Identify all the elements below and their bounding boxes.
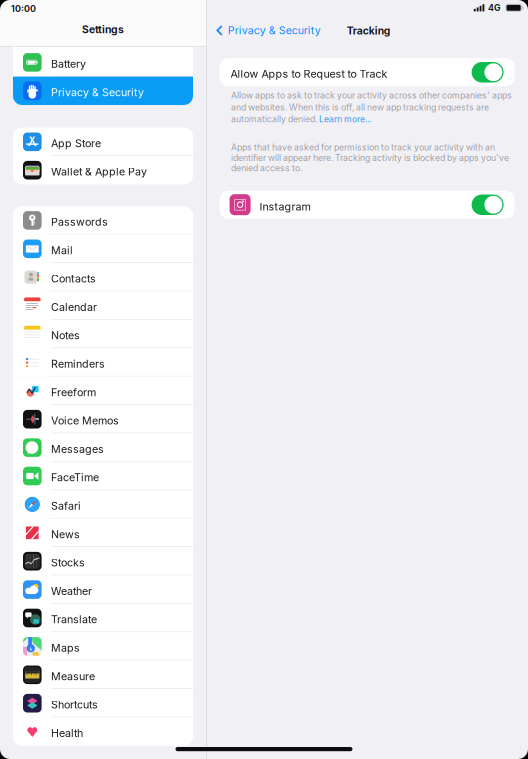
- staticText: Health: [51, 727, 83, 739]
- staticText: Passwords: [51, 215, 108, 228]
- button[interactable]: Notes: [13, 320, 193, 348]
- staticText: Weather: [51, 585, 92, 597]
- button[interactable]: Stocks: [13, 547, 193, 575]
- button[interactable]: Privacy & Security: [13, 77, 193, 105]
- staticText: Allow apps to ask to track your activity…: [231, 90, 512, 100]
- staticText: Notes: [51, 329, 80, 342]
- staticText: Allow Apps to Request to Track: [231, 67, 388, 80]
- button[interactable]: Safari: [13, 490, 193, 519]
- staticText: Battery: [51, 57, 86, 70]
- button[interactable]: Messages: [13, 433, 193, 462]
- staticText: Privacy & Security: [51, 86, 144, 99]
- staticText: Translate: [51, 613, 97, 626]
- button[interactable]: Learn more...: [319, 114, 371, 124]
- staticText: Voice Memos: [51, 414, 119, 427]
- staticText: Shortcuts: [51, 698, 98, 711]
- button[interactable]: App Store: [13, 128, 193, 156]
- button[interactable]: News: [13, 519, 193, 547]
- button[interactable]: Mail: [13, 235, 193, 263]
- button[interactable]: Instagram: [220, 191, 515, 219]
- staticText: Measure: [51, 670, 95, 683]
- staticText: Tracking: [347, 24, 391, 37]
- button[interactable]: Translate: [13, 604, 193, 632]
- staticText: Settings: [82, 23, 124, 36]
- staticText: Wallet & Apple Pay: [51, 165, 147, 178]
- button[interactable]: Maps: [13, 632, 193, 661]
- staticText: Apps that have asked for permission to t…: [231, 142, 509, 173]
- staticText: Reminders: [51, 357, 105, 370]
- button[interactable]: Privacy & Security: [216, 24, 321, 37]
- button[interactable]: Calendar: [13, 291, 193, 320]
- staticText: Learn more...: [319, 114, 371, 124]
- staticText: Calendar: [51, 301, 97, 313]
- staticText: Privacy & Security: [228, 24, 321, 37]
- staticText: FaceTime: [51, 471, 99, 484]
- staticText: 4G: [488, 2, 501, 13]
- staticText: App Store: [51, 137, 101, 150]
- button[interactable]: Freeform: [13, 377, 193, 405]
- button[interactable]: Weather: [13, 575, 193, 604]
- button[interactable]: Reminders: [13, 348, 193, 377]
- staticText: automatically denied.: [231, 114, 319, 124]
- staticText: News: [51, 528, 80, 541]
- staticText: Messages: [51, 443, 104, 455]
- button[interactable]: Health: [13, 717, 193, 746]
- button[interactable]: Passwords: [13, 206, 193, 235]
- staticText: Mail: [51, 244, 73, 257]
- button[interactable]: Voice Memos: [13, 405, 193, 433]
- button[interactable]: Allow Apps to Request to Track: [472, 62, 504, 82]
- staticText: Stocks: [51, 556, 85, 569]
- button[interactable]: Battery: [13, 48, 193, 77]
- staticText: Freeform: [51, 386, 96, 399]
- staticText: Maps: [51, 641, 80, 654]
- button[interactable]: FaceTime: [13, 462, 193, 490]
- staticText: Safari: [51, 499, 81, 512]
- staticText: 10:00: [11, 3, 36, 14]
- button[interactable]: Measure: [13, 661, 193, 689]
- button[interactable]: Shortcuts: [13, 689, 193, 717]
- staticText: Contacts: [51, 272, 96, 285]
- staticText: and websites. When this is off, all new …: [231, 102, 489, 112]
- button[interactable]: Battery: [13, 20, 193, 48]
- staticText: Battery: [51, 29, 86, 42]
- button[interactable]: Wallet & Apple Pay: [13, 156, 193, 184]
- button[interactable]: Contacts: [13, 263, 193, 291]
- staticText: Instagram: [260, 200, 311, 213]
